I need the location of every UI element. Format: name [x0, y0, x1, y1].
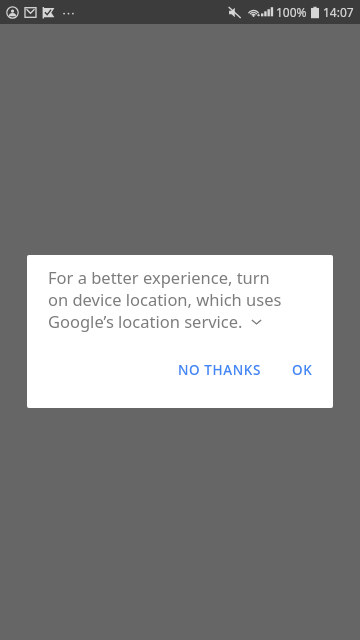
staticText: 100%	[276, 4, 307, 20]
staticText: For a better experience, turn	[48, 266, 270, 288]
button[interactable]: Expand location details	[249, 314, 263, 328]
button[interactable]: NO THANKS	[167, 352, 272, 388]
staticText: NO THANKS	[178, 361, 261, 379]
staticText: on device location, which uses	[48, 288, 282, 310]
button[interactable]: OK	[281, 352, 324, 388]
staticText: 14:07	[323, 4, 354, 20]
staticText: OK	[292, 361, 313, 379]
staticText: Google’s location service.	[48, 310, 243, 332]
